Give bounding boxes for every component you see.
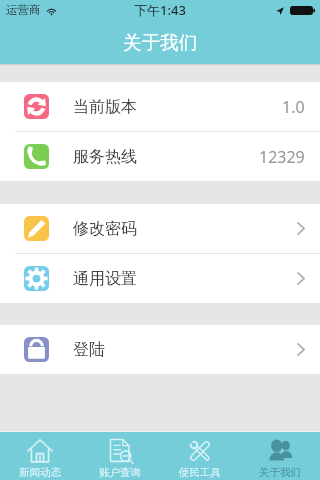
button[interactable]: 修改密码 [0, 204, 320, 253]
staticText: 关于我们 [259, 466, 301, 479]
button[interactable]: 通用设置 [0, 254, 320, 303]
button[interactable]: 服务热线 [0, 132, 320, 181]
staticText: 关于我们 [123, 31, 197, 54]
staticText: 新闻动态 [19, 466, 61, 479]
staticText: 运营商 [6, 3, 41, 17]
staticText: 修改密码 [73, 219, 137, 239]
staticText: 1.0 [282, 96, 305, 118]
button[interactable]: 当前版本 [0, 82, 320, 131]
staticText: 便民工具 [179, 466, 221, 479]
staticText: 登陆 [73, 340, 105, 360]
staticText: 当前版本 [73, 97, 137, 117]
staticText: 通用设置 [73, 269, 137, 289]
staticText: 12329 [259, 146, 305, 168]
staticText: 服务热线 [73, 147, 137, 167]
button[interactable]: 便民工具 [160, 432, 240, 480]
button[interactable]: 关于我们 [240, 432, 320, 480]
button[interactable]: 账户查询 [80, 432, 160, 480]
staticText: 下午1:43 [134, 1, 186, 19]
staticText: 账户查询 [99, 466, 141, 479]
button[interactable]: 登陆 [0, 325, 320, 374]
button[interactable]: 新闻动态 [0, 432, 80, 480]
